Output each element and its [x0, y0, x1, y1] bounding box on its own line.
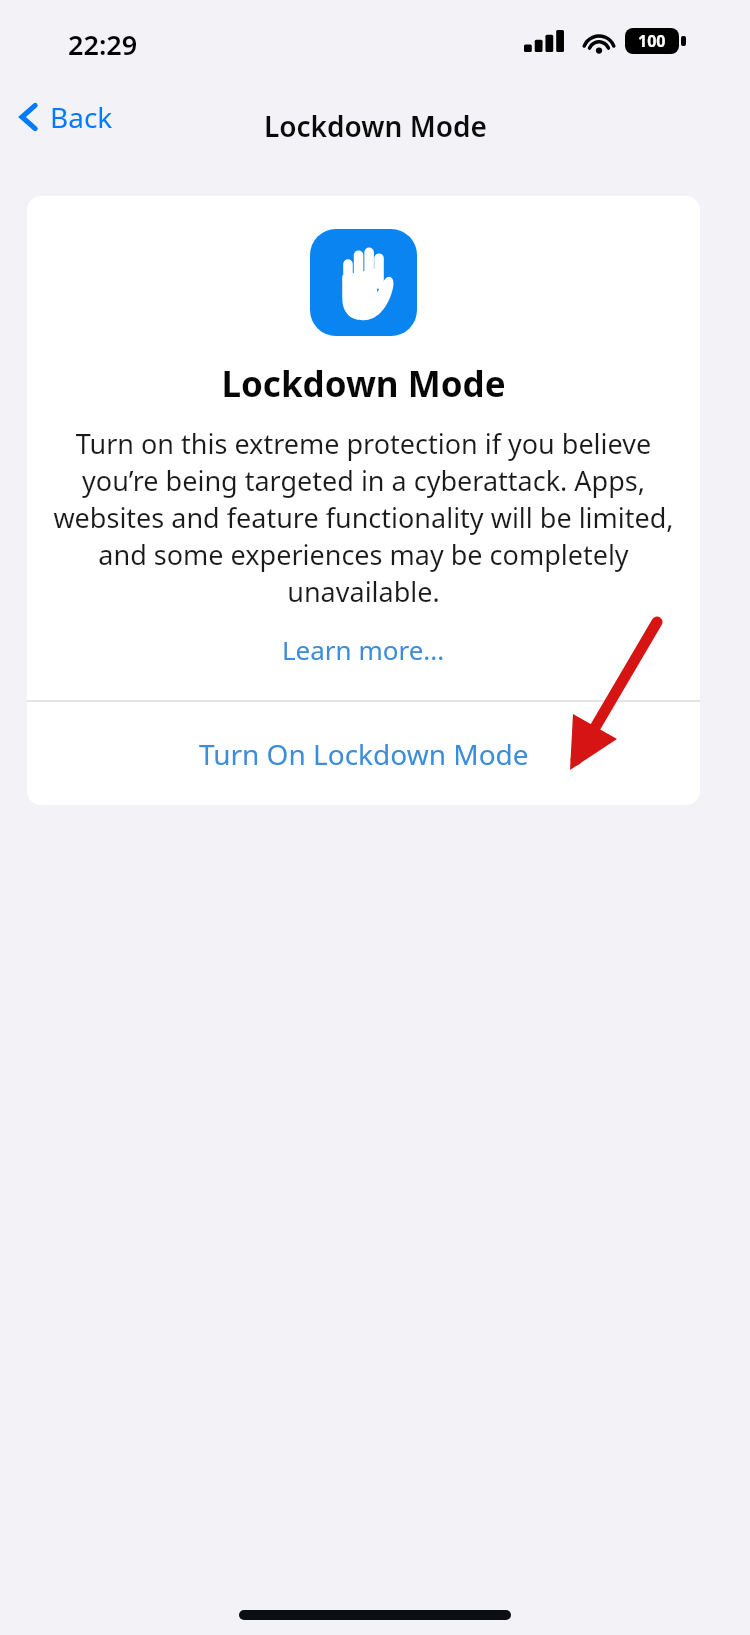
- button[interactable]: Back: [14, 98, 117, 136]
- button[interactable]: Turn On Lockdown Mode: [27, 702, 700, 805]
- staticText: 22:29: [68, 26, 138, 63]
- button[interactable]: Learn more...: [270, 628, 457, 671]
- staticText: 100: [638, 30, 666, 52]
- staticText: Lockdown Mode: [27, 360, 700, 408]
- staticText: Turn On Lockdown Mode: [199, 735, 529, 773]
- other: Lockdown Mode: [310, 229, 417, 336]
- staticText: Turn on this extreme protection if you b…: [53, 425, 674, 610]
- staticText: Lockdown Mode: [264, 107, 487, 145]
- staticText: Back: [50, 98, 113, 136]
